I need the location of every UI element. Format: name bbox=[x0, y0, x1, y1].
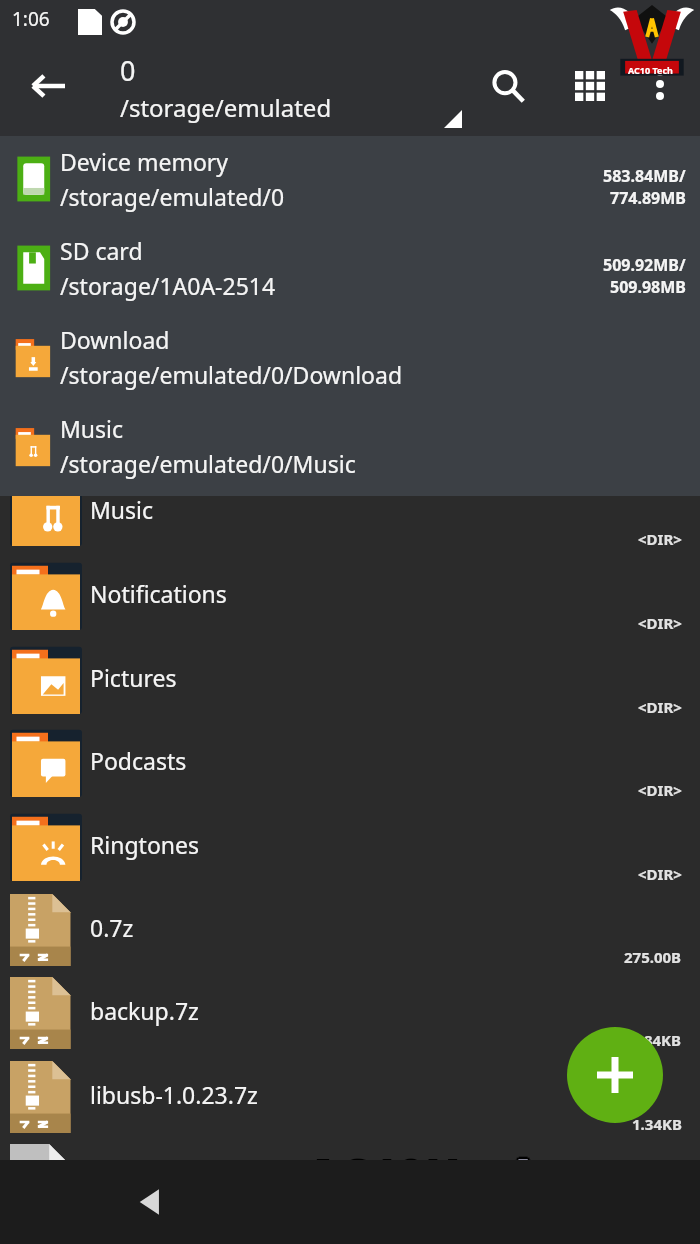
button[interactable]: More options bbox=[632, 56, 688, 112]
staticText: AC10Hacks bbox=[304, 1144, 569, 1208]
staticText: Music bbox=[90, 494, 154, 525]
button[interactable]: libusb-1.0.23.7z bbox=[0, 1055, 700, 1138]
staticText: AC10Hacks bbox=[308, 1148, 573, 1212]
staticText: 509.92MB/ bbox=[603, 254, 686, 276]
staticText: 970.84KB bbox=[614, 1030, 682, 1050]
staticText: Podcasts bbox=[90, 745, 187, 776]
staticText: Podcasts.txt bbox=[90, 1162, 222, 1193]
staticText: <DIR> bbox=[638, 613, 682, 633]
staticText: Music bbox=[60, 413, 124, 444]
button[interactable]: Device memory bbox=[0, 136, 700, 225]
staticText: backup.7z bbox=[90, 995, 199, 1026]
button[interactable]: 0.7z bbox=[0, 888, 700, 971]
staticText: Notifications bbox=[90, 578, 227, 609]
staticText: 1.34KB bbox=[632, 1114, 682, 1134]
staticText: /storage/emulated bbox=[120, 91, 332, 124]
button[interactable]: Back bbox=[18, 56, 78, 116]
staticText: /storage/emulated/0/Music bbox=[60, 448, 356, 479]
staticText: /storage/1A0A-2514 bbox=[60, 270, 276, 301]
staticText: 774.89MB bbox=[610, 187, 686, 209]
staticText: AC10Hacks bbox=[309, 1146, 574, 1210]
staticText: AC10Hacks bbox=[306, 1143, 571, 1207]
staticText: Ringtones bbox=[90, 829, 200, 860]
staticText: <DIR> bbox=[638, 697, 682, 717]
staticText: 275.00B bbox=[624, 947, 682, 967]
button[interactable]: Ringtones bbox=[0, 805, 700, 888]
button[interactable]: Music bbox=[0, 403, 700, 492]
staticText: Device memory bbox=[60, 146, 229, 177]
staticText: 583.84MB/ bbox=[603, 165, 686, 187]
staticText: <DIR> bbox=[638, 780, 682, 800]
button[interactable]: Search bbox=[478, 56, 538, 116]
staticText: <DIR> bbox=[638, 864, 682, 884]
staticText: 0.7z bbox=[90, 912, 134, 943]
button[interactable]: backup.7z bbox=[0, 971, 700, 1054]
staticText: <DIR> bbox=[638, 529, 682, 549]
staticText: AC10Hacks bbox=[308, 1144, 573, 1208]
staticText: AC10Hacks bbox=[303, 1146, 568, 1210]
button[interactable]: Notifications bbox=[0, 554, 700, 637]
staticText: 1:06 bbox=[12, 6, 50, 32]
staticText: 509.98MB bbox=[610, 276, 686, 298]
staticText: Download bbox=[60, 324, 170, 355]
staticText: AC10Hacks bbox=[304, 1148, 569, 1212]
staticText: Pictures bbox=[90, 662, 177, 693]
button[interactable]: Music bbox=[0, 470, 700, 553]
button[interactable]: Grid view bbox=[560, 56, 620, 116]
staticText: AC10Hacks bbox=[306, 1149, 571, 1213]
button[interactable]: SD card bbox=[0, 225, 700, 314]
staticText: AC10Hacks bbox=[306, 1146, 571, 1210]
button[interactable]: Podcasts bbox=[0, 721, 700, 804]
staticText: libusb-1.0.23.7z bbox=[90, 1079, 258, 1110]
staticText: AC10 Tech bbox=[628, 64, 673, 76]
staticText: /storage/emulated/0 bbox=[60, 181, 285, 212]
button[interactable]: Back bbox=[108, 1170, 192, 1234]
staticText: /storage/emulated/0/Download bbox=[60, 359, 403, 390]
button[interactable]: Add bbox=[567, 1027, 663, 1123]
button[interactable]: 0 bbox=[96, 52, 476, 134]
button[interactable]: Podcasts.txt bbox=[0, 1138, 700, 1221]
staticText: 0 bbox=[120, 52, 136, 89]
staticText: SD card bbox=[60, 235, 143, 266]
button[interactable]: Download bbox=[0, 314, 700, 403]
button[interactable]: Pictures bbox=[0, 638, 700, 721]
